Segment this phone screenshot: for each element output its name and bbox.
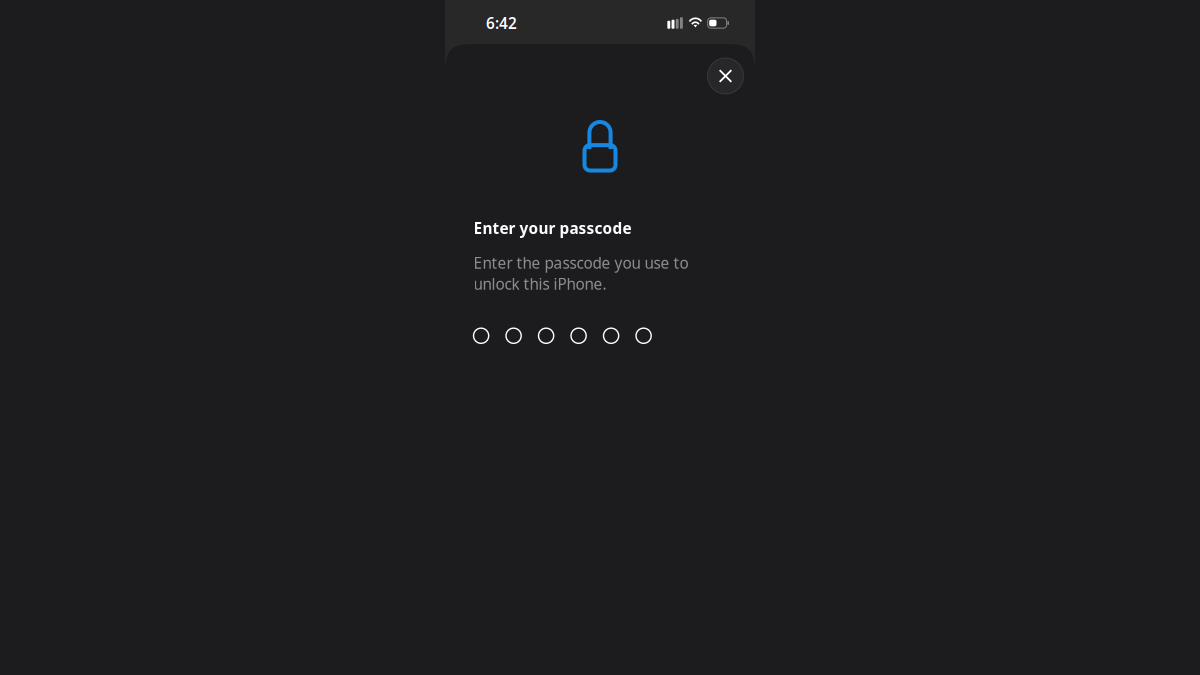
button[interactable]: Passcode field, 6 digits <box>473 328 651 343</box>
staticText: Enter the passcode you use to <box>473 252 688 273</box>
button[interactable]: Close <box>707 58 743 94</box>
staticText: 6:42 <box>486 13 517 33</box>
staticText: unlock this iPhone. <box>473 273 606 294</box>
staticText: Enter your passcode <box>473 217 631 238</box>
